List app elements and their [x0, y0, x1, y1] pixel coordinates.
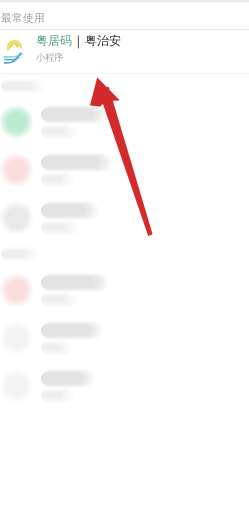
staticText: 粤居码	[36, 33, 72, 48]
staticText: |	[72, 33, 85, 49]
staticText: 粤治安	[85, 33, 121, 48]
staticText: 最常使用	[1, 11, 45, 24]
button[interactable]: 粤居码	[0, 30, 249, 73]
staticText: 小程序	[36, 52, 63, 63]
